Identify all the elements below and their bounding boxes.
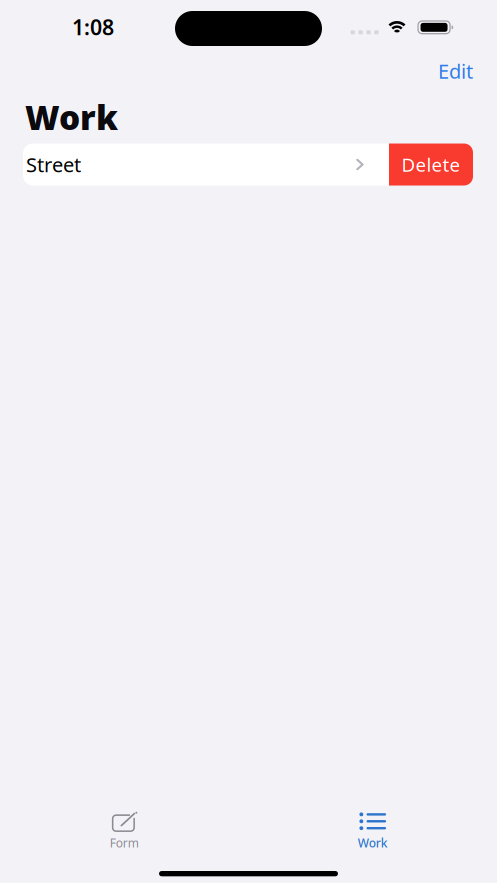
button[interactable]: Delete (389, 143, 473, 185)
staticText: Street (26, 151, 81, 178)
button[interactable]: Form (0, 805, 248, 854)
staticText: Work (358, 835, 388, 851)
staticText: Form (110, 835, 139, 851)
staticText: Work (25, 95, 118, 139)
staticText: Edit (438, 58, 473, 84)
button[interactable]: Street (23, 143, 389, 185)
staticText: 1:08 (72, 13, 114, 41)
button[interactable]: Work (248, 805, 497, 854)
staticText: Delete (401, 152, 460, 177)
button[interactable]: Edit (429, 56, 473, 86)
